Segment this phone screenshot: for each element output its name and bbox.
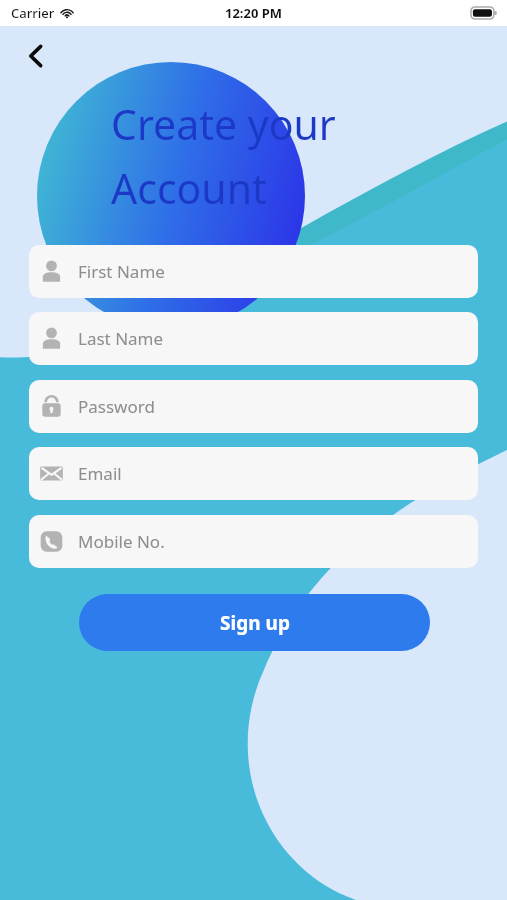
button[interactable]: Sign up [79, 594, 430, 651]
staticText: Create your [111, 96, 336, 152]
button[interactable]: Password [29, 380, 478, 433]
staticText: Email [78, 462, 122, 485]
staticText: Sign up [220, 610, 290, 636]
staticText: Carrier [11, 4, 55, 22]
button[interactable]: Back [14, 34, 58, 78]
staticText: Last Name [78, 327, 164, 350]
staticText: Account [111, 160, 267, 216]
button[interactable]: Email [29, 447, 478, 500]
button[interactable]: Last Name [29, 312, 478, 365]
button[interactable]: First Name [29, 245, 478, 298]
staticText: Mobile No. [78, 530, 165, 553]
staticText: First Name [78, 260, 165, 283]
button[interactable]: Mobile No. [29, 515, 478, 568]
staticText: 12:20 PM [225, 4, 283, 22]
staticText: Password [78, 395, 155, 418]
